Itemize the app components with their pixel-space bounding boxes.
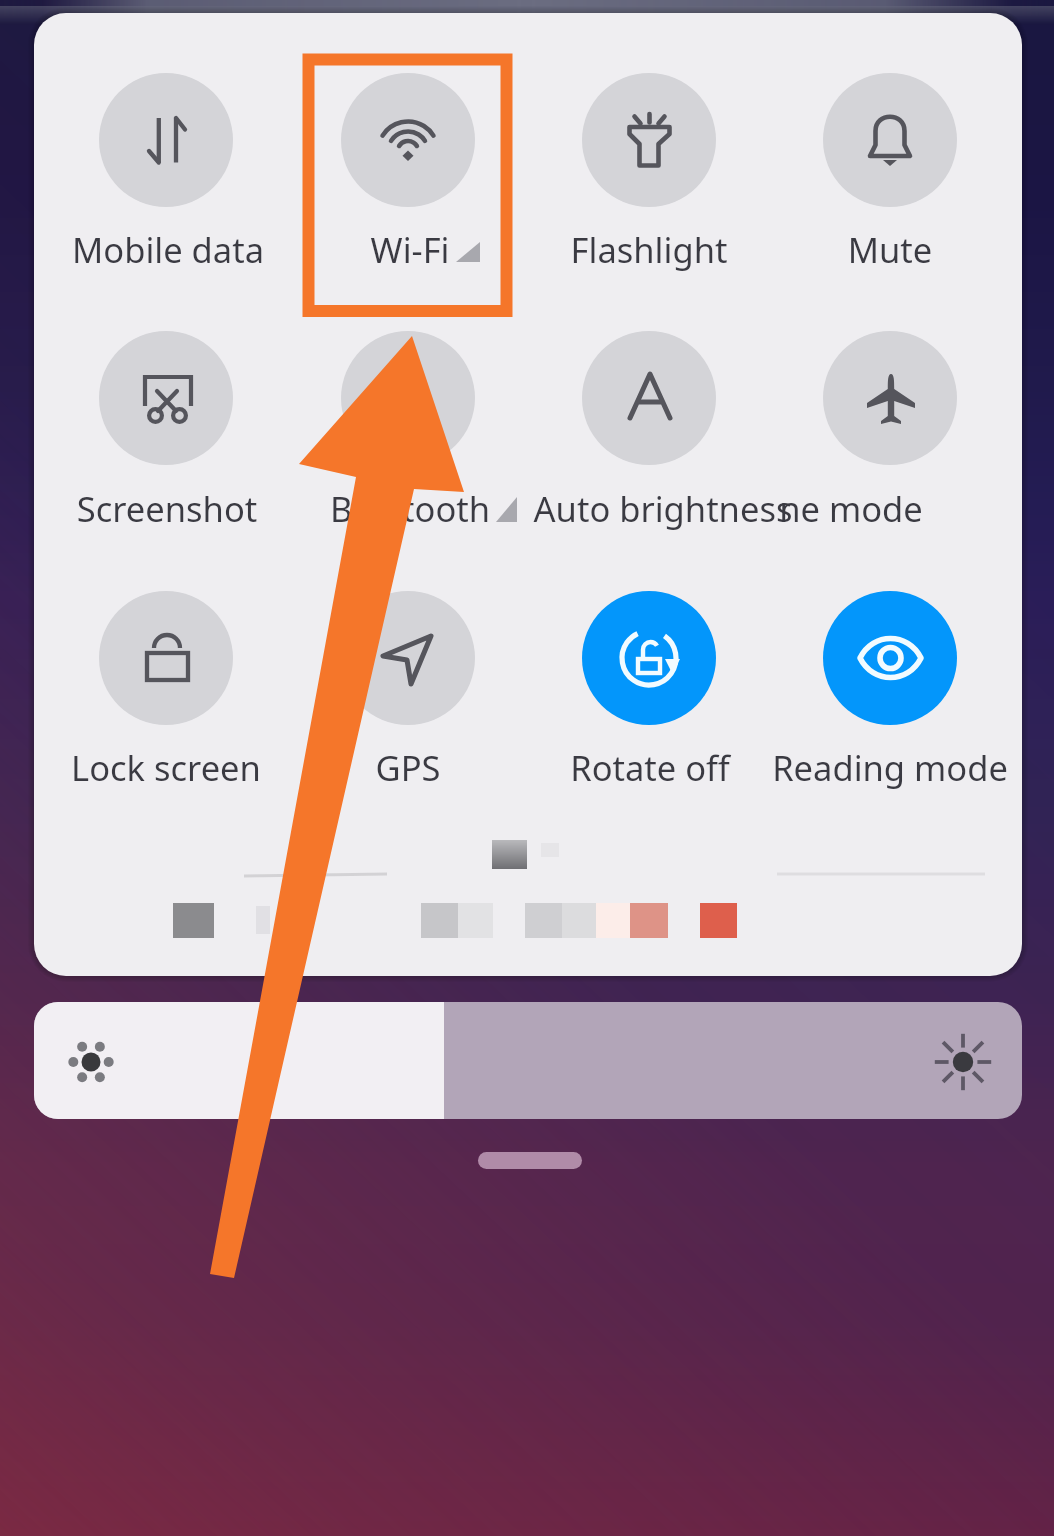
button[interactable]: Brightness — [34, 1002, 1022, 1119]
button[interactable]: GPS — [298, 588, 518, 808]
button[interactable]: Mobile data — [56, 70, 276, 290]
button[interactable]: Mute — [780, 70, 1000, 290]
button[interactable]: Wi-Fi — [298, 70, 518, 290]
staticText: ne mode — [631, 485, 1054, 541]
staticText: GPS — [188, 744, 628, 800]
staticText: Wi-Fi — [190, 226, 630, 282]
staticText: Rotate off — [430, 744, 870, 800]
staticText: Lock screen — [0, 744, 386, 800]
staticText: Flashlight — [429, 226, 869, 282]
button[interactable]: Reading mode — [780, 588, 1000, 808]
staticText: Screenshot — [0, 485, 387, 541]
staticText: Mute — [670, 226, 1054, 282]
staticText: Reading mode — [670, 744, 1054, 800]
button[interactable]: Lock screen — [56, 588, 276, 808]
button[interactable]: Rotate off — [539, 588, 759, 808]
staticText: Mobile data — [0, 226, 388, 282]
button[interactable]: Flashlight — [539, 70, 759, 290]
staticText: Auto brightness — [443, 485, 883, 541]
button[interactable]: Bluetooth — [298, 329, 518, 549]
button[interactable]: Screenshot — [56, 329, 276, 549]
button[interactable]: Airplane mode — [780, 329, 1000, 549]
button[interactable]: Auto brightness — [539, 329, 759, 549]
staticText: Bluetooth — [190, 485, 630, 541]
